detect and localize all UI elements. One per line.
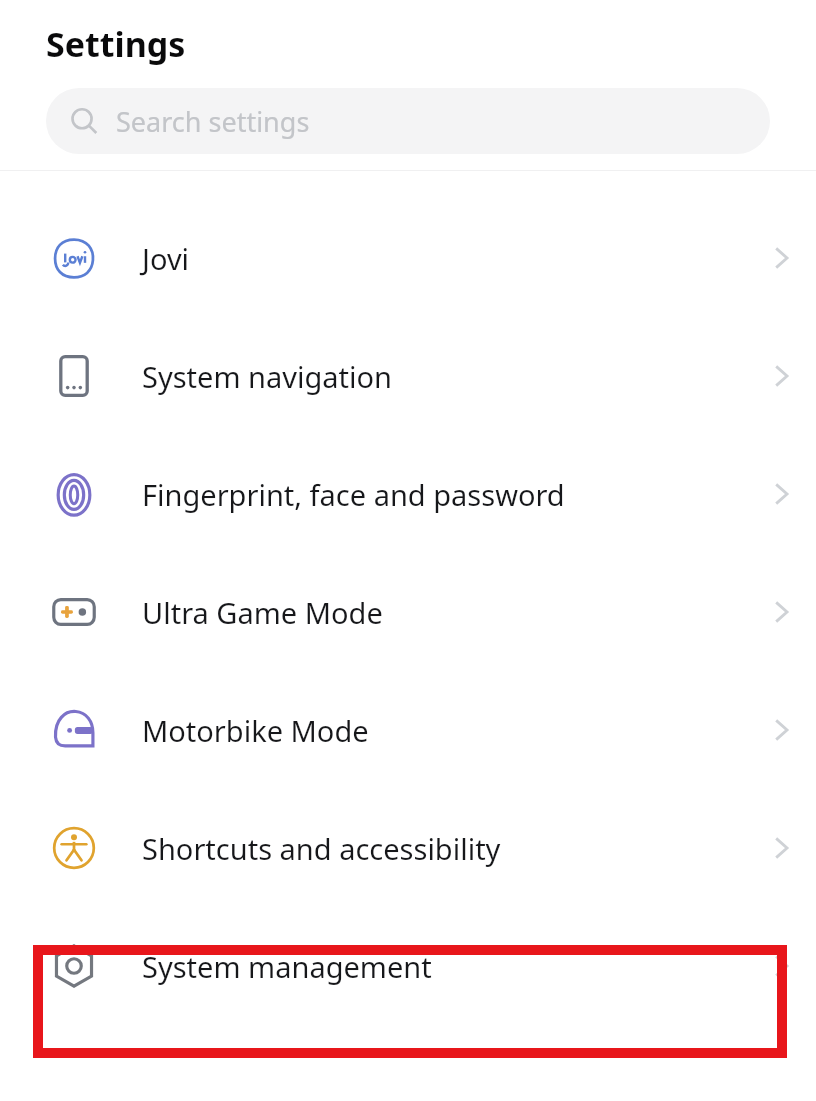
button[interactable]: Fingerprint, face and password [0, 435, 816, 553]
staticText: Ultra Game Mode [142, 593, 746, 632]
staticText: System navigation [142, 357, 746, 396]
staticText: System management [142, 947, 746, 986]
staticText: Shortcuts and accessibility [142, 829, 746, 868]
button[interactable]: System navigation [0, 317, 816, 435]
staticText: Motorbike Mode [142, 711, 746, 750]
staticText: Jovi [142, 239, 746, 278]
staticText: Fingerprint, face and password [142, 475, 746, 514]
button[interactable]: Shortcuts and accessibility [0, 789, 816, 907]
staticText: Settings [46, 21, 186, 67]
button[interactable]: Search settings [46, 88, 770, 154]
staticText: Search settings [116, 103, 310, 140]
button[interactable]: Jovi [0, 199, 816, 317]
button[interactable]: Ultra Game Mode [0, 553, 816, 671]
button[interactable]: Motorbike Mode [0, 671, 816, 789]
button[interactable]: System management [0, 907, 816, 1025]
